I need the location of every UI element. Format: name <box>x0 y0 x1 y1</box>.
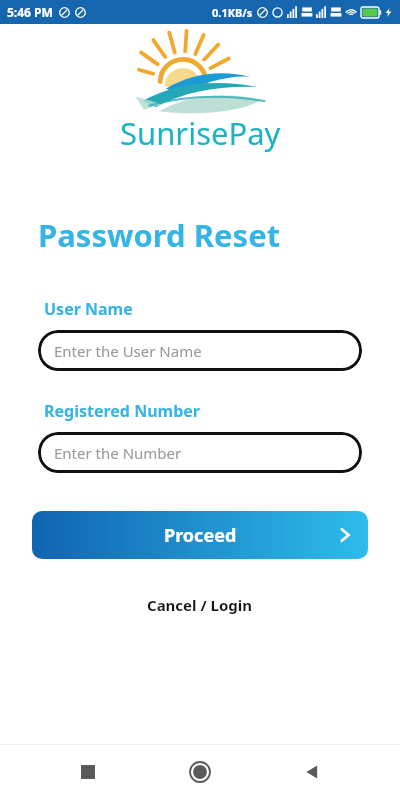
staticText: Enter the Number <box>54 443 182 463</box>
staticText: SunrisePay <box>120 112 281 154</box>
button[interactable]: Proceed <box>32 511 368 559</box>
button[interactable]: Cancel / Login <box>137 591 263 619</box>
staticText: 0.1KB/s <box>212 5 253 20</box>
staticText: 5:46 PM <box>7 4 53 20</box>
button[interactable]: Back <box>288 748 336 796</box>
staticText: Proceed <box>164 523 237 548</box>
staticText: Cancel / Login <box>147 595 253 615</box>
staticText: Enter the User Name <box>54 341 202 361</box>
button[interactable]: Enter the User Name <box>38 330 362 371</box>
button[interactable]: Enter the Number <box>38 432 362 473</box>
button[interactable]: Home <box>176 748 224 796</box>
staticText: User Name <box>44 298 133 320</box>
staticText: Registered Number <box>44 400 200 422</box>
staticText: Password Reset <box>38 214 281 256</box>
button[interactable]: Recent apps <box>64 748 112 796</box>
